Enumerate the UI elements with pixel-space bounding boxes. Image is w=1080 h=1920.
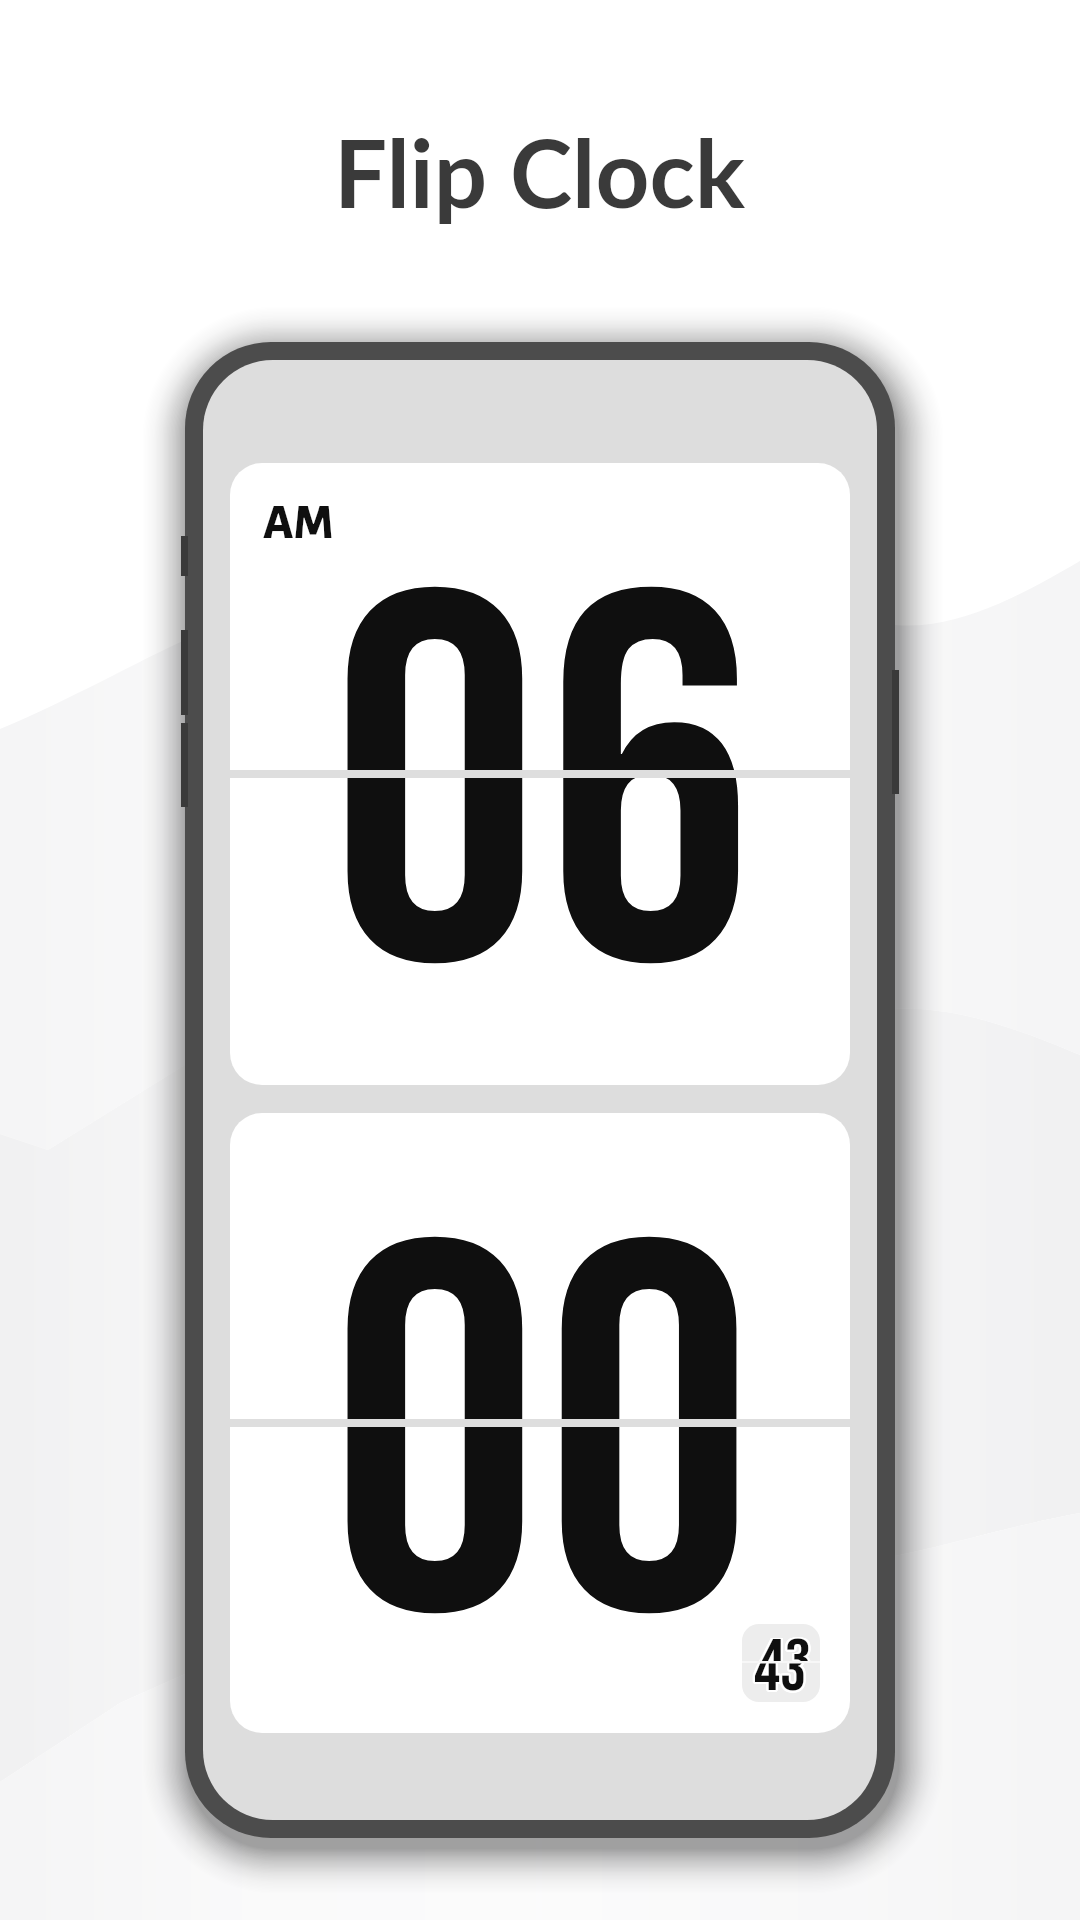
button[interactable]: 00 — [230, 1113, 850, 1733]
staticText: AM — [263, 498, 334, 548]
button[interactable]: AM — [230, 463, 850, 1085]
staticText: 00 — [330, 1137, 759, 1733]
button[interactable]: Seconds — [742, 1624, 820, 1702]
staticText: Flip Clock — [334, 115, 746, 228]
staticText: 06 — [330, 487, 759, 1085]
